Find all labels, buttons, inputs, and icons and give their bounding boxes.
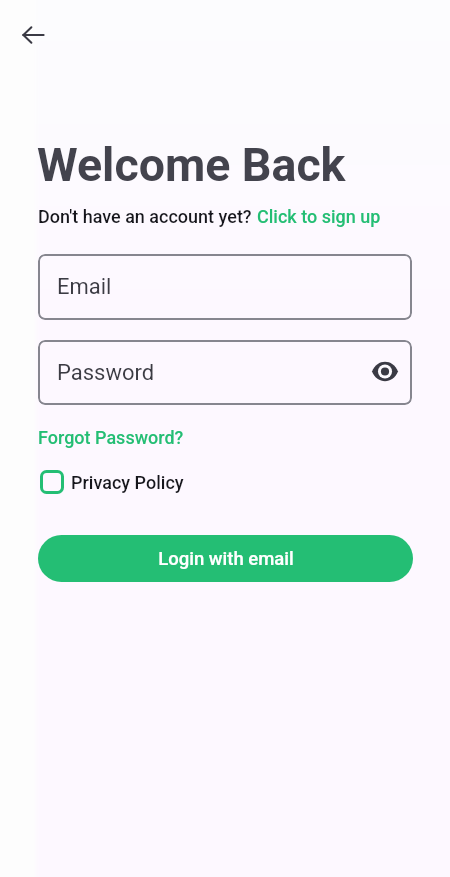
button[interactable]: Email (38, 254, 412, 320)
button[interactable]: Password (38, 340, 412, 405)
staticText: Don't have an account yet? (38, 206, 257, 227)
button[interactable]: Show password (369, 355, 401, 387)
staticText: Password (57, 360, 155, 386)
button[interactable]: Back (11, 13, 55, 57)
button[interactable]: Login with email (38, 535, 413, 582)
staticText: Privacy Policy (71, 472, 184, 493)
staticText: Email (57, 274, 112, 300)
button[interactable]: Click to sign up (257, 206, 381, 227)
staticText: Login with email (158, 548, 294, 570)
button[interactable]: Forgot Password? (38, 427, 184, 448)
staticText: Welcome Back (37, 138, 346, 192)
button[interactable]: Privacy Policy (40, 470, 184, 494)
